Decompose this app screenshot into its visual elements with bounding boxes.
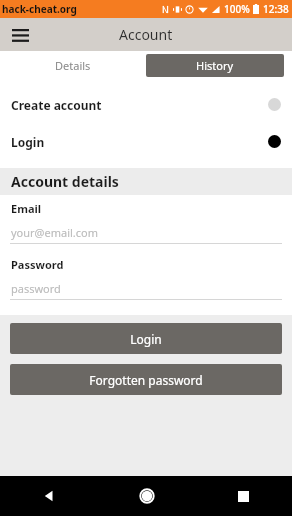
button[interactable]: Recent apps bbox=[195, 476, 292, 516]
button[interactable]: Details bbox=[0, 51, 146, 80]
staticText: 12:38 bbox=[263, 2, 289, 16]
button[interactable]: Home bbox=[98, 476, 195, 516]
staticText: 100% bbox=[224, 2, 250, 16]
staticText: Account bbox=[119, 25, 173, 44]
button[interactable]: Login bbox=[0, 123, 292, 160]
staticText: History bbox=[196, 58, 234, 73]
staticText: your@email.com bbox=[11, 225, 98, 240]
staticText: Account details bbox=[11, 172, 119, 191]
staticText: Login bbox=[130, 331, 162, 347]
staticText: Password bbox=[11, 257, 64, 272]
staticText: Forgotten password bbox=[89, 372, 203, 388]
staticText: Email bbox=[11, 201, 42, 216]
button[interactable]: Login bbox=[10, 323, 282, 354]
button[interactable]: Back bbox=[0, 476, 98, 516]
staticText: hack-cheat.org bbox=[2, 2, 77, 16]
staticText: Login bbox=[11, 134, 268, 150]
button[interactable]: Open navigation menu bbox=[8, 23, 32, 47]
button[interactable]: History bbox=[146, 54, 284, 77]
button[interactable]: Forgotten password bbox=[10, 364, 282, 395]
staticText: Details bbox=[55, 58, 91, 73]
button[interactable]: your@email.com bbox=[0, 221, 292, 251]
staticText: Create account bbox=[11, 97, 268, 113]
button[interactable]: password bbox=[0, 277, 292, 307]
staticText: password bbox=[11, 281, 61, 296]
button[interactable]: Create account bbox=[0, 86, 292, 123]
